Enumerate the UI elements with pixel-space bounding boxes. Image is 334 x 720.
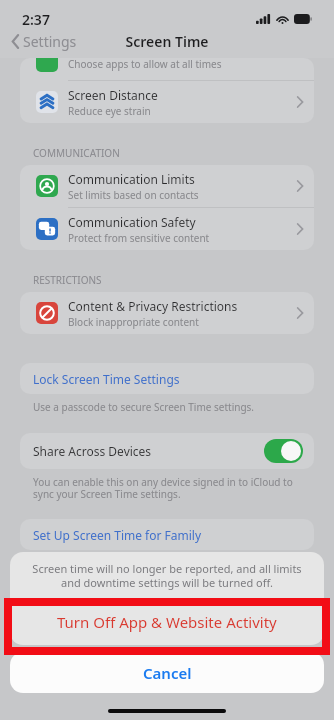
staticText: Protect from sensitive content [68, 231, 210, 245]
staticText: Block inappropriate content [68, 315, 199, 329]
staticText: Content & Privacy Restrictions [68, 298, 238, 314]
staticText: Turn Off App & Website Activity [57, 612, 277, 632]
staticText: Set limits based on contacts [68, 188, 199, 202]
staticText: Lock Screen Time Settings [33, 371, 180, 387]
staticText: Screen Distance [68, 87, 158, 103]
staticText: 2:37 [22, 10, 50, 29]
staticText: RESTRICTIONS [33, 273, 102, 287]
button[interactable]: Choose apps to allow at all times [20, 58, 314, 80]
button[interactable]: Communication Limits [20, 165, 314, 207]
button[interactable]: Lock Screen Time Settings [20, 363, 314, 394]
staticText: Communication Limits [68, 171, 195, 187]
button[interactable]: Cancel [10, 652, 324, 693]
staticText: COMMUNICATION [33, 146, 120, 160]
staticText: Communication Safety [68, 214, 196, 230]
staticText: Screen Time [0, 32, 334, 51]
staticText: Settings [23, 32, 77, 51]
staticText: Set Up Screen Time for Family [33, 527, 202, 543]
staticText: Reduce eye strain [68, 104, 151, 118]
button[interactable]: Turn Off App & Website Activity [10, 599, 324, 645]
staticText: Cancel [143, 663, 192, 683]
button[interactable]: Back to Settings [12, 32, 77, 51]
button[interactable]: Set Up Screen Time for Family [20, 519, 314, 550]
staticText: Use a passcode to secure Screen Time set… [33, 400, 255, 414]
button[interactable]: Share Across Devices [20, 433, 314, 469]
button[interactable]: Screen Distance [20, 81, 314, 123]
button[interactable]: Content & Privacy Restrictions [20, 292, 314, 334]
staticText: Choose apps to allow at all times [68, 58, 222, 71]
staticText: You can enable this on any device signed… [33, 475, 304, 501]
button[interactable]: Communication Safety [20, 208, 314, 250]
staticText: Share Across Devices [33, 443, 264, 459]
staticText: Screen time will no longer be reported, … [32, 561, 302, 590]
